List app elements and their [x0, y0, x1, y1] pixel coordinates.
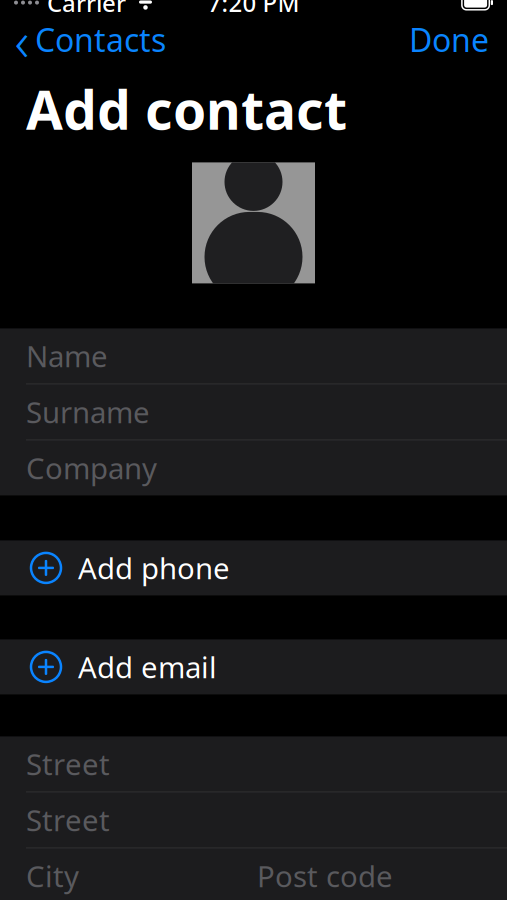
button[interactable]: City: [0, 848, 507, 900]
button[interactable]: Add email: [0, 639, 507, 694]
staticText: Add email: [78, 647, 217, 686]
staticText: Carrier: [47, 0, 126, 19]
staticText: 7:20 PM: [207, 0, 299, 19]
button[interactable]: ‹: [0, 13, 176, 66]
staticText: Street: [26, 744, 110, 783]
button[interactable]: Add photo: [192, 162, 315, 283]
staticText: Street: [26, 800, 110, 839]
button[interactable]: Street: [0, 792, 507, 847]
button[interactable]: Done: [391, 13, 507, 66]
staticText: ‹: [14, 2, 29, 77]
staticText: City: [26, 856, 79, 895]
staticText: Company: [26, 448, 157, 487]
button[interactable]: Surname: [0, 384, 507, 439]
staticText: Surname: [26, 392, 150, 431]
button[interactable]: Name: [0, 328, 507, 383]
button[interactable]: Company: [0, 440, 507, 495]
button[interactable]: Street: [0, 736, 507, 791]
staticText: Add contact: [26, 74, 347, 144]
staticText: Post code: [257, 856, 393, 895]
staticText: Name: [26, 336, 108, 375]
staticText: Contacts: [35, 18, 166, 61]
staticText: Done: [409, 18, 489, 61]
button[interactable]: Add phone: [0, 540, 507, 595]
staticText: Add phone: [78, 548, 230, 587]
